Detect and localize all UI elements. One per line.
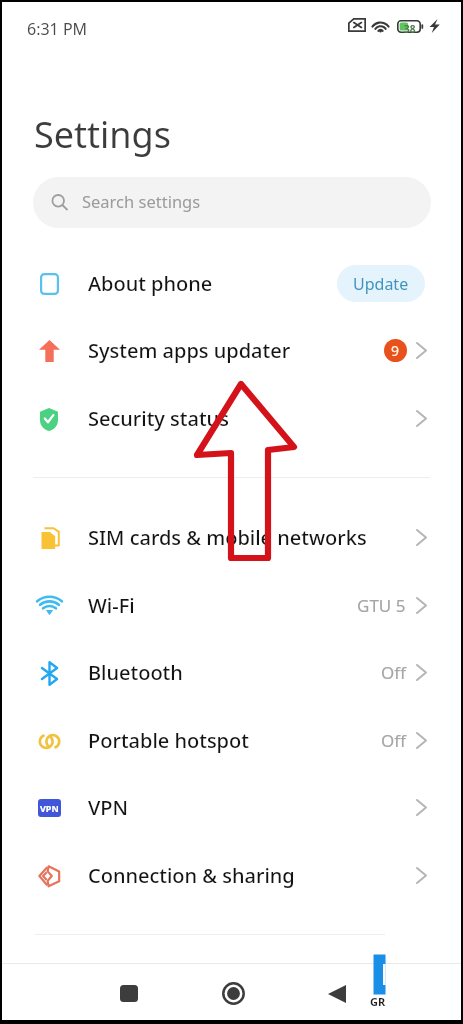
staticText: VPN <box>88 794 129 821</box>
button[interactable]: Update <box>337 265 425 302</box>
button[interactable]: Connection & sharing <box>2 841 461 909</box>
staticText: Update <box>353 273 409 295</box>
staticText: Portable hotspot <box>88 727 249 754</box>
button[interactable]: Back <box>308 966 365 1019</box>
button[interactable]: VPN <box>2 773 461 841</box>
staticText: Off <box>381 729 406 752</box>
staticText: Wi-Fi <box>88 592 135 619</box>
button[interactable]: Portable hotspot <box>2 706 461 774</box>
staticText: Bluetooth <box>88 659 183 686</box>
button[interactable]: Bluetooth <box>2 638 461 706</box>
staticText: 6:31 PM <box>27 18 88 40</box>
staticText: GR <box>370 994 386 1009</box>
button[interactable]: Security status <box>2 384 461 452</box>
button[interactable]: Home <box>205 966 262 1019</box>
staticText: 38 <box>404 22 416 36</box>
button[interactable]: Recents <box>100 966 157 1019</box>
button[interactable]: SIM cards & mobile networks <box>2 503 461 571</box>
button[interactable]: Search settings <box>33 177 431 228</box>
button[interactable]: About phone <box>2 249 461 317</box>
staticText: Settings <box>34 110 171 159</box>
staticText: 9 <box>391 341 400 360</box>
staticText: VPN <box>40 802 59 814</box>
button[interactable]: System apps updater <box>2 316 461 384</box>
button[interactable]: Wi-Fi <box>2 571 461 639</box>
staticText: Security status <box>88 405 229 432</box>
staticText: Off <box>381 661 406 684</box>
staticText: Search settings <box>82 190 201 212</box>
staticText: About phone <box>88 270 213 297</box>
staticText: SIM cards & mobile networks <box>88 524 367 551</box>
staticText: System apps updater <box>88 337 291 364</box>
staticText: Connection & sharing <box>88 862 295 889</box>
staticText: GTU 5 <box>357 594 406 617</box>
